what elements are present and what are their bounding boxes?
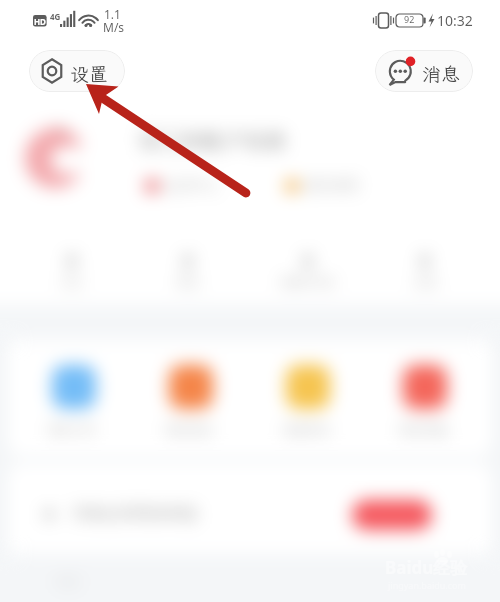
button[interactable]: 消息 xyxy=(375,50,473,92)
staticText: 设置 xyxy=(70,61,109,86)
staticText: HD xyxy=(34,16,46,27)
staticText: 10:32 xyxy=(437,11,473,30)
staticText: 1.1 xyxy=(104,6,121,22)
staticText: 消息 xyxy=(422,61,461,86)
staticText: 张三的账户名称 xyxy=(139,128,286,154)
staticText: M/s xyxy=(103,19,125,35)
staticText: 92 xyxy=(404,13,415,25)
staticText: 4G xyxy=(50,11,61,22)
staticText: 会员中心 xyxy=(163,177,219,195)
button[interactable]: 设置 xyxy=(29,50,125,92)
staticText: 成长体系 xyxy=(303,177,359,195)
